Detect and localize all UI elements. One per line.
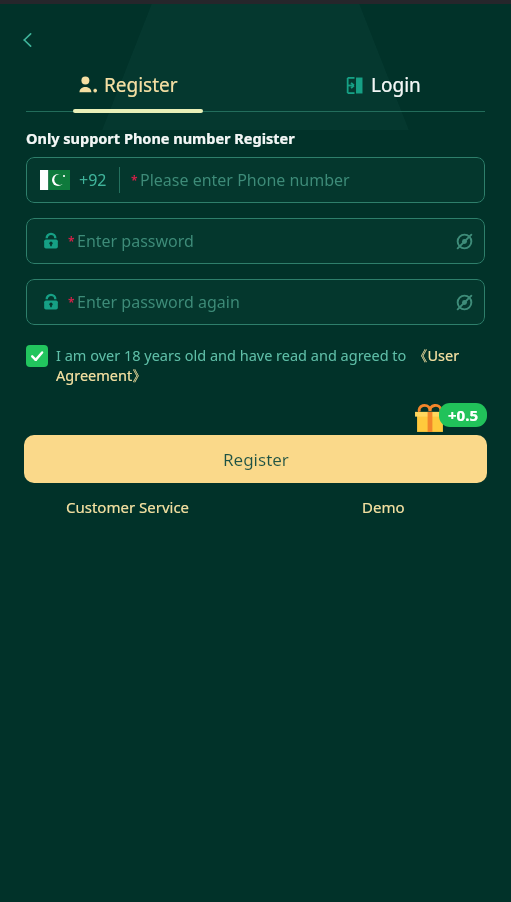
staticText: 《User [413,345,460,365]
button[interactable]: Demo [255,497,511,517]
button[interactable]: * [26,218,485,264]
button[interactable]: Customer Service [0,497,255,517]
staticText: * [131,172,138,188]
staticText: Please enter Phone number [140,169,350,191]
button[interactable]: * [26,279,485,325]
button[interactable]: Select country code [40,170,70,190]
staticText: Demo [362,497,405,517]
button[interactable]: Register [24,435,487,483]
button[interactable]: Toggle password visibility [447,224,481,258]
button[interactable]: I am over 18 years old and have read and… [26,345,460,385]
staticText: Register [104,72,178,98]
button[interactable]: Register [0,62,255,108]
staticText: I am over 18 years old and have read and… [56,345,407,365]
staticText: * [68,233,75,249]
staticText: +0.5 [448,405,478,425]
staticText: Login [371,72,421,98]
button[interactable]: Login [255,62,511,108]
staticText: Customer Service [66,497,190,517]
staticText: * [68,294,75,310]
staticText: +92 [79,169,107,191]
staticText: Agreement》 [56,365,147,385]
staticText: Only support Phone number Register [26,128,295,148]
staticText: Register [223,448,289,471]
button[interactable]: Select country code [26,157,485,203]
staticText: Enter password [77,230,194,252]
staticText: Enter password again [77,291,240,313]
button[interactable]: Toggle password visibility [447,285,481,319]
button[interactable]: Back [6,18,50,62]
